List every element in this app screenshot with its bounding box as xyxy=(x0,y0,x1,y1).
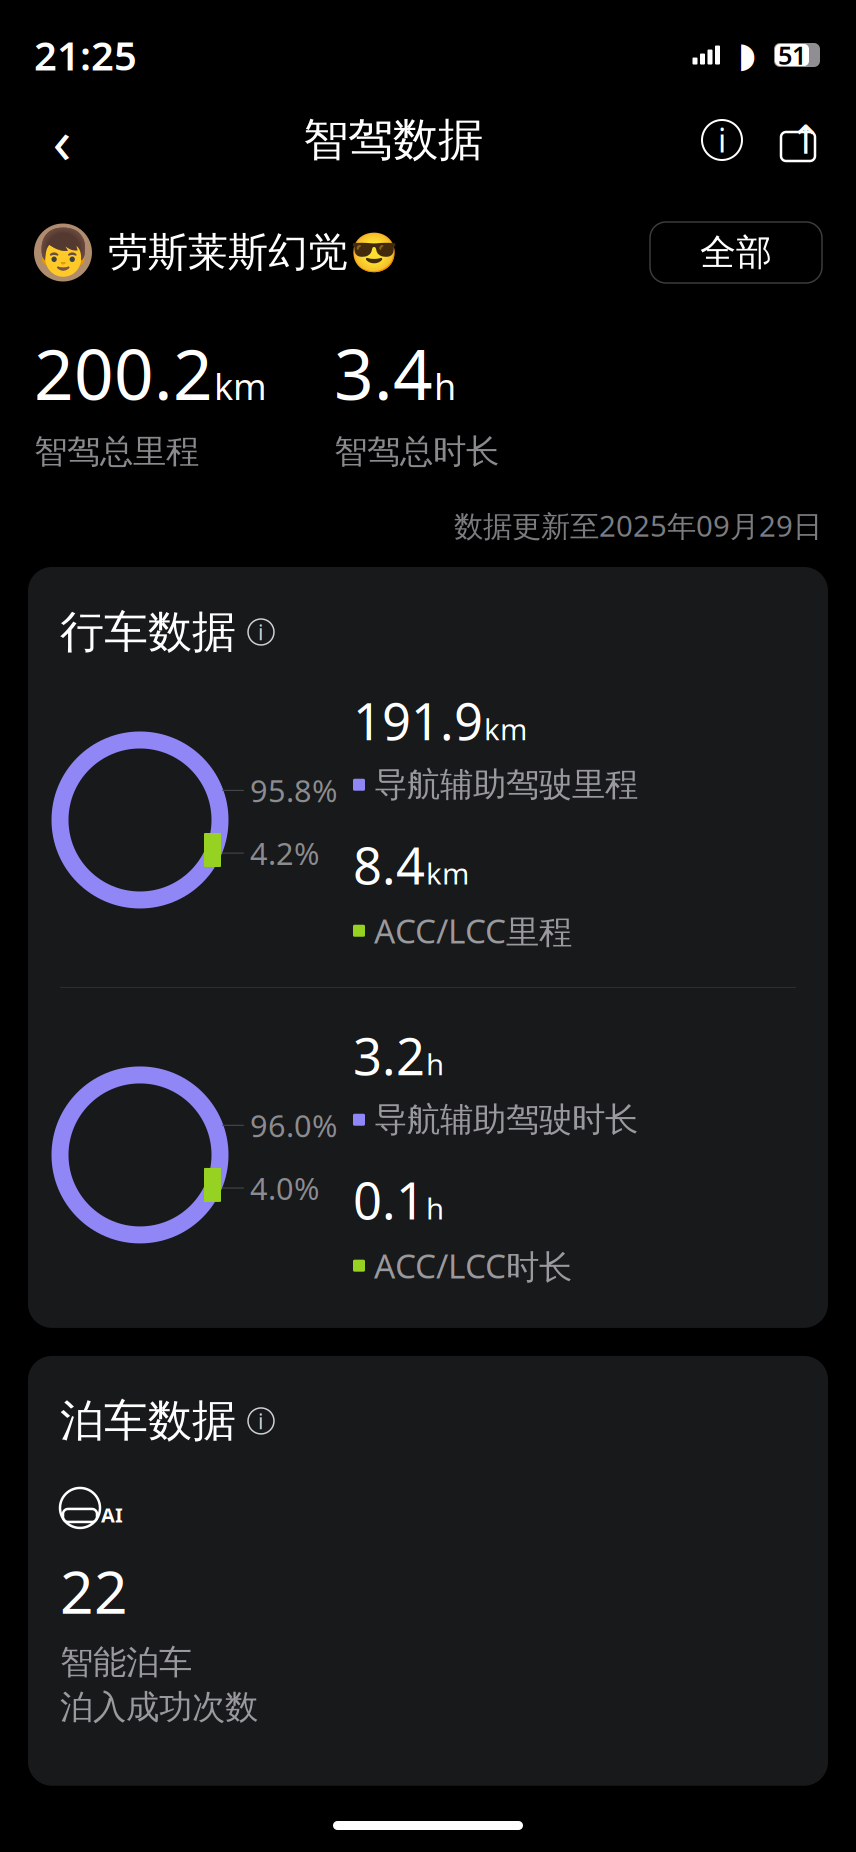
button[interactable]: 说明 xyxy=(694,112,750,168)
staticText: 96.0% xyxy=(250,1105,337,1146)
staticText: 智驾总里程 xyxy=(34,431,199,472)
staticText: h xyxy=(426,1044,444,1083)
staticText: 3.4 xyxy=(334,327,433,419)
button[interactable]: 关于泊车数据 xyxy=(248,1408,274,1434)
staticText: 导航辅助驾驶时长 xyxy=(374,1099,638,1140)
staticText: h xyxy=(426,1189,444,1228)
staticText: 智能泊车 xyxy=(60,1642,192,1683)
staticText: i xyxy=(258,1407,264,1435)
staticText: 泊入成功次数 xyxy=(60,1687,258,1728)
staticText: 22 xyxy=(60,1552,128,1630)
button[interactable]: 用户 劳斯莱斯幻觉 xyxy=(34,223,398,281)
staticText: i xyxy=(718,119,726,161)
staticText: 😎 xyxy=(350,230,398,275)
staticText: km xyxy=(214,362,267,410)
staticText: ◗ xyxy=(738,35,756,75)
staticText: 3.2 xyxy=(353,1022,425,1089)
staticText: ACC/LCC里程 xyxy=(374,908,572,953)
staticText: 行车数据 xyxy=(60,605,236,659)
staticText: 8.4 xyxy=(353,831,425,898)
staticText: 95.8% xyxy=(250,770,337,811)
button[interactable]: 关于行车数据 xyxy=(248,619,274,645)
staticText: 智驾总时长 xyxy=(334,431,499,472)
staticText: ‹ xyxy=(52,99,71,181)
staticText: ACC/LCC时长 xyxy=(374,1243,572,1288)
staticText: 劳斯莱斯幻觉 xyxy=(108,228,348,277)
button[interactable]: 分享 xyxy=(772,114,824,166)
button[interactable]: 全部 xyxy=(650,222,822,283)
staticText: 4.2% xyxy=(250,833,319,873)
staticText: 全部 xyxy=(700,230,772,275)
staticText: 21:25 xyxy=(34,28,137,81)
staticText: h xyxy=(434,362,456,410)
staticText: 数据更新至2025年09月29日 xyxy=(454,506,822,545)
staticText: 智驾数据 xyxy=(303,112,483,168)
staticText: AI xyxy=(101,1501,123,1528)
staticText: 191.9 xyxy=(353,687,483,754)
staticText: 0.1 xyxy=(353,1166,425,1233)
staticText: 4.0% xyxy=(250,1168,319,1208)
staticText: 👦 xyxy=(35,227,91,278)
staticText: km xyxy=(484,709,527,748)
staticText: 200.2 xyxy=(34,327,213,419)
staticText: 泊车数据 xyxy=(60,1394,236,1448)
staticText: km xyxy=(426,854,469,893)
staticText: 51 xyxy=(778,38,806,72)
staticText: 导航辅助驾驶里程 xyxy=(374,764,638,805)
staticText: ↑ xyxy=(789,117,823,163)
button[interactable]: 返回 xyxy=(32,110,92,170)
staticText: i xyxy=(258,618,264,646)
